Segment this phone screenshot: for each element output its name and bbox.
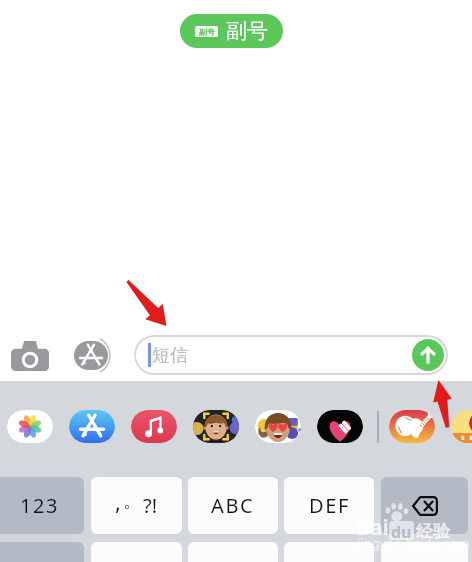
staticText: 副号 [199, 27, 215, 37]
staticText: 。 [123, 489, 142, 513]
button[interactable]: Music [131, 410, 177, 443]
staticText: , [115, 486, 121, 516]
button[interactable]: App Store [68, 336, 116, 376]
button[interactable]: Music app [389, 410, 435, 443]
button[interactable]: More [451, 410, 472, 443]
button[interactable]: 副号 [180, 14, 283, 48]
staticText: jingyan.baidu.com [357, 534, 470, 552]
staticText: 短信 [152, 344, 188, 367]
staticText: 123 [20, 492, 60, 519]
button[interactable]: , [91, 477, 182, 534]
button[interactable]: Memoji [193, 410, 239, 443]
button[interactable]: Camera [6, 336, 54, 376]
staticText: DEF [309, 492, 350, 519]
button[interactable]: ABC [188, 477, 278, 534]
button[interactable] [188, 542, 278, 562]
staticText: du [391, 521, 412, 540]
button[interactable]: Send [412, 339, 444, 371]
button[interactable]: DEF [284, 477, 374, 534]
button[interactable]: Backspace [381, 477, 468, 534]
button[interactable]: 123 [0, 477, 84, 534]
staticText: ?! [143, 492, 158, 519]
staticText: 副号 [226, 18, 268, 44]
button[interactable]: 短信 [134, 335, 448, 375]
button[interactable] [91, 542, 182, 562]
button[interactable]: Fitness [317, 410, 363, 443]
staticText: Bai [356, 513, 389, 542]
staticText: 经验 [416, 521, 450, 542]
staticText: ABC [211, 492, 255, 519]
button[interactable]: App Store [69, 410, 115, 443]
button[interactable]: Stickers [255, 410, 301, 443]
button[interactable]: Photos [7, 410, 53, 443]
